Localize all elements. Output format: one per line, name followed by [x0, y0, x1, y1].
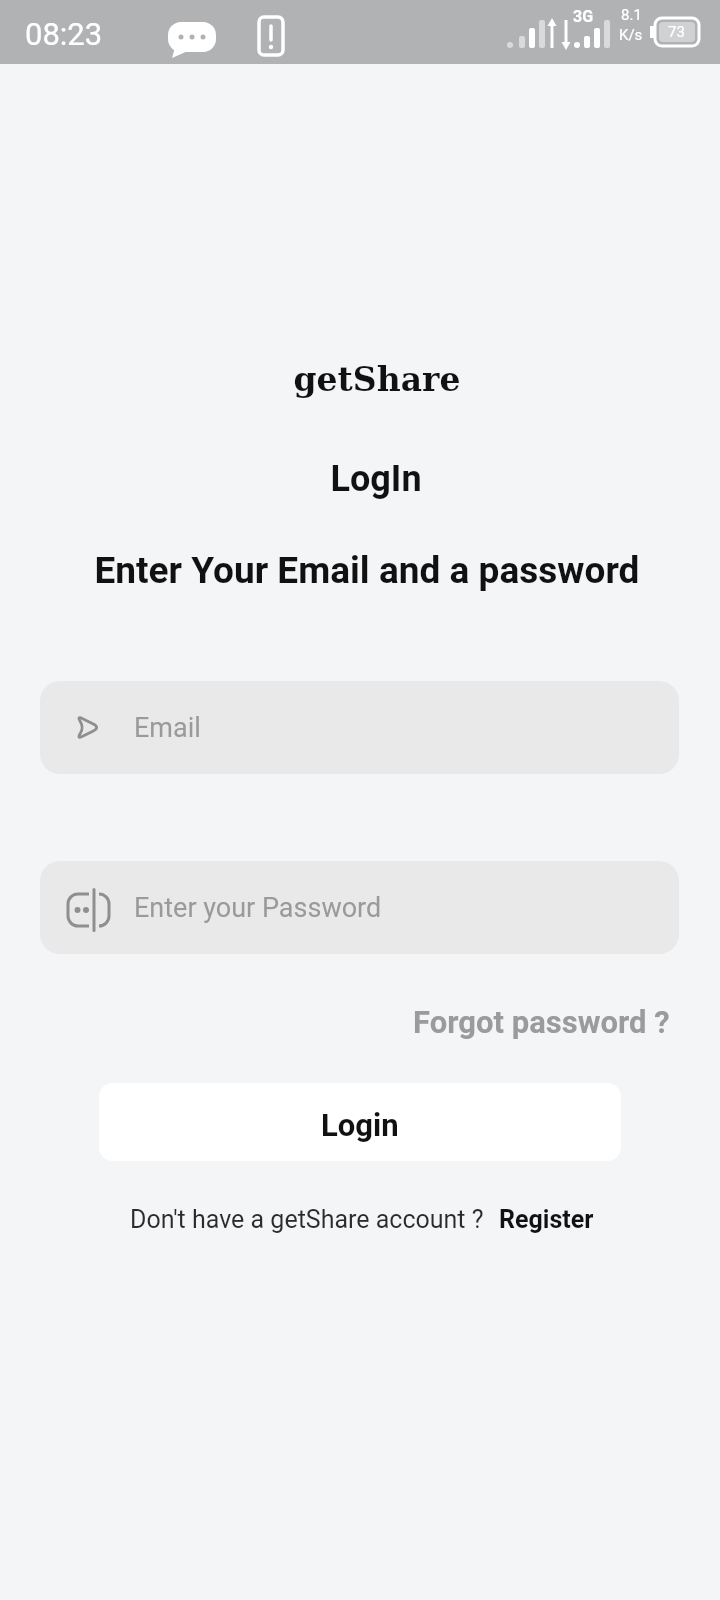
button[interactable]: Login: [99, 1083, 621, 1161]
button[interactable]: Register: [499, 1205, 594, 1234]
staticText: getShare: [17, 360, 720, 399]
staticText: Email: [134, 712, 201, 744]
staticText: Enter your Password: [134, 892, 382, 924]
staticText: 73: [668, 23, 685, 41]
staticText: Don't have a getShare account ?: [130, 1205, 484, 1234]
staticText: 8.1: [621, 6, 642, 24]
button[interactable]: Email: [40, 681, 679, 774]
staticText: Enter Your Email and a password: [7, 549, 720, 592]
staticText: 3G: [573, 7, 594, 26]
staticText: K/s: [619, 26, 643, 44]
staticText: Login: [321, 1107, 399, 1143]
staticText: LogIn: [16, 458, 720, 500]
staticText: 08:23: [25, 16, 103, 52]
button[interactable]: Forgot password ?: [413, 1004, 670, 1040]
button[interactable]: Enter your Password: [40, 861, 679, 954]
